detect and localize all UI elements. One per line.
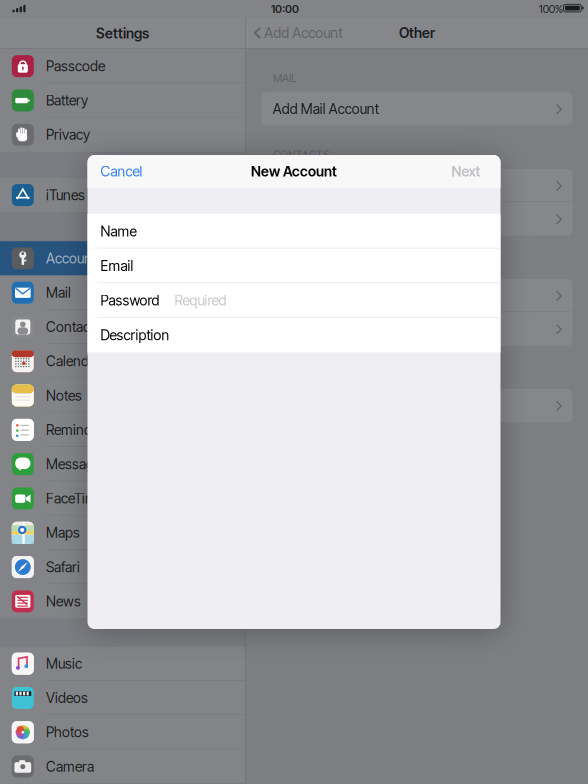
staticText: Reminders	[46, 421, 111, 438]
staticText: FaceTime	[46, 490, 104, 507]
staticText: Password	[100, 292, 159, 309]
button[interactable]: Passcode	[0, 49, 245, 83]
staticText: Next	[451, 163, 480, 180]
button[interactable]: Videos	[0, 681, 245, 715]
button[interactable]: Privacy	[0, 118, 245, 152]
button[interactable]: Cancel	[100, 155, 142, 188]
staticText: Notes	[46, 387, 82, 404]
button[interactable]: Name	[87, 214, 500, 249]
staticText: Accounts	[46, 250, 103, 267]
staticText: Videos	[46, 689, 88, 706]
staticText: Other	[399, 24, 435, 41]
staticText: Passcode	[46, 58, 105, 75]
button[interactable]: Battery	[0, 83, 245, 118]
staticText: Battery	[46, 92, 88, 109]
button[interactable]: News	[0, 584, 245, 618]
staticText: Safari	[46, 559, 80, 575]
staticText: Required	[174, 292, 226, 309]
button[interactable]: Next	[444, 155, 487, 188]
button[interactable]	[261, 279, 572, 312]
staticText: Description	[100, 327, 169, 343]
button[interactable]	[261, 312, 572, 346]
button[interactable]: Maps	[0, 516, 245, 550]
staticText: Messages	[46, 456, 108, 473]
button[interactable]: Mail	[0, 275, 245, 310]
staticText: Mail	[46, 284, 71, 301]
staticText: Name	[100, 223, 136, 240]
staticText: New Account	[251, 163, 337, 180]
button[interactable]: Photos	[0, 715, 245, 749]
staticText: Music	[46, 655, 82, 672]
staticText: 10:00	[271, 2, 299, 16]
staticText: Privacy	[46, 126, 90, 143]
staticText: MAIL	[273, 71, 297, 85]
button[interactable]: Add Account	[254, 18, 342, 48]
button[interactable]: Safari	[0, 550, 245, 584]
staticText: Calendar	[46, 353, 101, 370]
button[interactable]: Camera	[0, 749, 245, 784]
button[interactable]: Messages	[0, 447, 245, 481]
button[interactable]	[261, 202, 572, 236]
button[interactable]: Reminders	[0, 413, 245, 447]
staticText: iTunes	[46, 187, 85, 203]
button[interactable]: Description	[87, 318, 500, 352]
staticText: Cancel	[100, 163, 142, 180]
button[interactable]	[261, 389, 572, 422]
staticText: Photos	[46, 724, 89, 741]
button[interactable]: Email	[87, 249, 500, 283]
staticText: CONTACTS	[273, 148, 329, 161]
button[interactable]: Music	[0, 646, 245, 681]
staticText: Contacts	[46, 318, 101, 335]
staticText: Add Account	[264, 24, 342, 41]
staticText: Camera	[46, 758, 94, 775]
button[interactable]: Accounts	[0, 241, 245, 275]
staticText: News	[46, 593, 81, 610]
staticText: 100%	[539, 2, 563, 16]
button[interactable]: Calendar	[0, 344, 245, 378]
button[interactable]	[261, 169, 572, 202]
staticText: Email	[100, 257, 133, 274]
staticText: Maps	[46, 524, 80, 541]
button[interactable]: iTunes	[0, 178, 245, 212]
button[interactable]: Notes	[0, 378, 245, 413]
button[interactable]: FaceTime	[0, 481, 245, 516]
button[interactable]: Contacts	[0, 310, 245, 344]
staticText: Add Mail Account	[273, 100, 379, 117]
button[interactable]: Add Mail Account	[261, 92, 572, 126]
button[interactable]: Password	[87, 283, 500, 318]
staticText: Settings	[96, 25, 149, 42]
